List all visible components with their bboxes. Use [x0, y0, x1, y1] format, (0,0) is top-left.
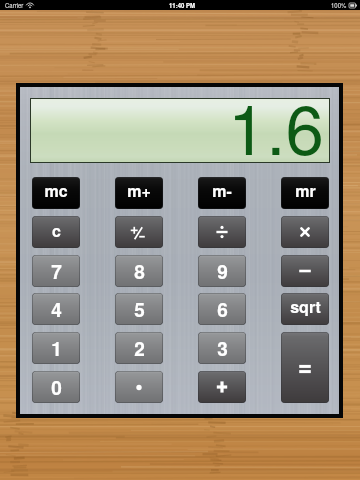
- button[interactable]: 9: [198, 255, 246, 287]
- staticText: 100%: [331, 1, 347, 10]
- button[interactable]: Plus: [198, 371, 246, 403]
- staticText: c: [52, 219, 61, 242]
- staticText: sqrt: [290, 295, 321, 318]
- button[interactable]: mr: [281, 177, 329, 209]
- staticText: 4: [51, 296, 62, 323]
- button[interactable]: 2: [115, 332, 163, 364]
- button[interactable]: 8: [115, 255, 163, 287]
- button[interactable]: 0: [32, 371, 80, 403]
- button[interactable]: 4: [32, 293, 80, 325]
- button[interactable]: 6: [198, 293, 246, 325]
- button[interactable]: 5: [115, 293, 163, 325]
- staticText: 8: [134, 258, 145, 285]
- button[interactable]: Multiply: [281, 216, 329, 248]
- staticText: mr: [295, 179, 316, 202]
- staticText: 2: [134, 335, 145, 362]
- button[interactable]: Equals: [281, 332, 329, 403]
- staticText: m-: [212, 179, 232, 202]
- staticText: m+: [127, 179, 151, 202]
- staticText: 5: [134, 296, 145, 323]
- staticText: 0: [51, 374, 62, 401]
- button[interactable]: 7: [32, 255, 80, 287]
- staticText: 1.6: [228, 76, 324, 175]
- button[interactable]: Plus minus: [115, 216, 163, 248]
- button[interactable]: Decimal point: [115, 371, 163, 403]
- staticText: 1: [51, 335, 62, 362]
- staticText: 6: [217, 296, 228, 323]
- button[interactable]: Divide: [198, 216, 246, 248]
- button[interactable]: c: [32, 216, 80, 248]
- staticText: 9: [217, 258, 228, 285]
- button[interactable]: mc: [32, 177, 80, 209]
- button[interactable]: Minus: [281, 255, 329, 287]
- button[interactable]: sqrt: [281, 293, 329, 325]
- button[interactable]: m-: [198, 177, 246, 209]
- staticText: Carrier: [5, 1, 24, 10]
- staticText: 11:40 PM: [169, 1, 196, 10]
- button[interactable]: 1: [32, 332, 80, 364]
- staticText: mc: [44, 179, 68, 202]
- staticText: 3: [217, 335, 228, 362]
- staticText: 7: [51, 258, 62, 285]
- button[interactable]: 3: [198, 332, 246, 364]
- button[interactable]: m+: [115, 177, 163, 209]
